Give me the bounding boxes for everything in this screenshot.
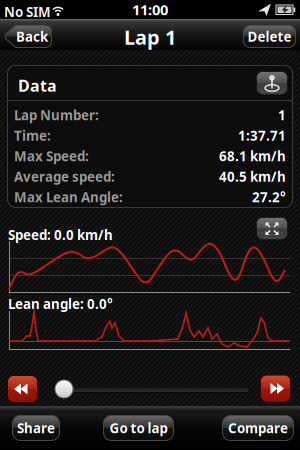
staticText: 1: [278, 106, 286, 124]
button[interactable]: Back: [4, 25, 52, 48]
button[interactable]: Share: [12, 415, 60, 441]
staticText: Time:: [14, 127, 51, 144]
staticText: Lap Number:: [14, 106, 99, 124]
staticText: 27.2°: [252, 188, 286, 206]
staticText: 68.1 km/h: [219, 147, 286, 165]
staticText: Max Lean Angle:: [14, 188, 123, 206]
staticText: 40.5 km/h: [219, 168, 286, 185]
staticText: Data: [18, 75, 57, 96]
button[interactable]: Fast forward: [260, 374, 291, 402]
staticText: Speed: 0.0 km/h: [8, 226, 113, 244]
staticText: 1:37.71: [238, 127, 286, 144]
staticText: No SIM: [4, 3, 51, 21]
staticText: Lean angle: 0.0°: [8, 295, 113, 313]
staticText: Compare: [228, 419, 288, 437]
button[interactable]: Go to lap: [103, 415, 174, 441]
button[interactable]: Show on map: [256, 71, 288, 95]
staticText: Share: [17, 419, 55, 437]
button[interactable]: Rewind: [7, 375, 38, 403]
staticText: Delete: [247, 28, 291, 45]
staticText: Go to lap: [109, 419, 167, 437]
button[interactable]: Playback position: [50, 377, 250, 398]
staticText: Lap 1: [124, 24, 176, 50]
staticText: Back: [16, 28, 48, 45]
button[interactable]: Expand chart: [256, 217, 288, 240]
staticText: Max Speed:: [14, 147, 89, 165]
button[interactable]: Delete: [243, 25, 296, 48]
staticText: Average speed:: [14, 168, 115, 185]
staticText: 11:00: [132, 0, 168, 19]
button[interactable]: Compare: [222, 415, 294, 441]
